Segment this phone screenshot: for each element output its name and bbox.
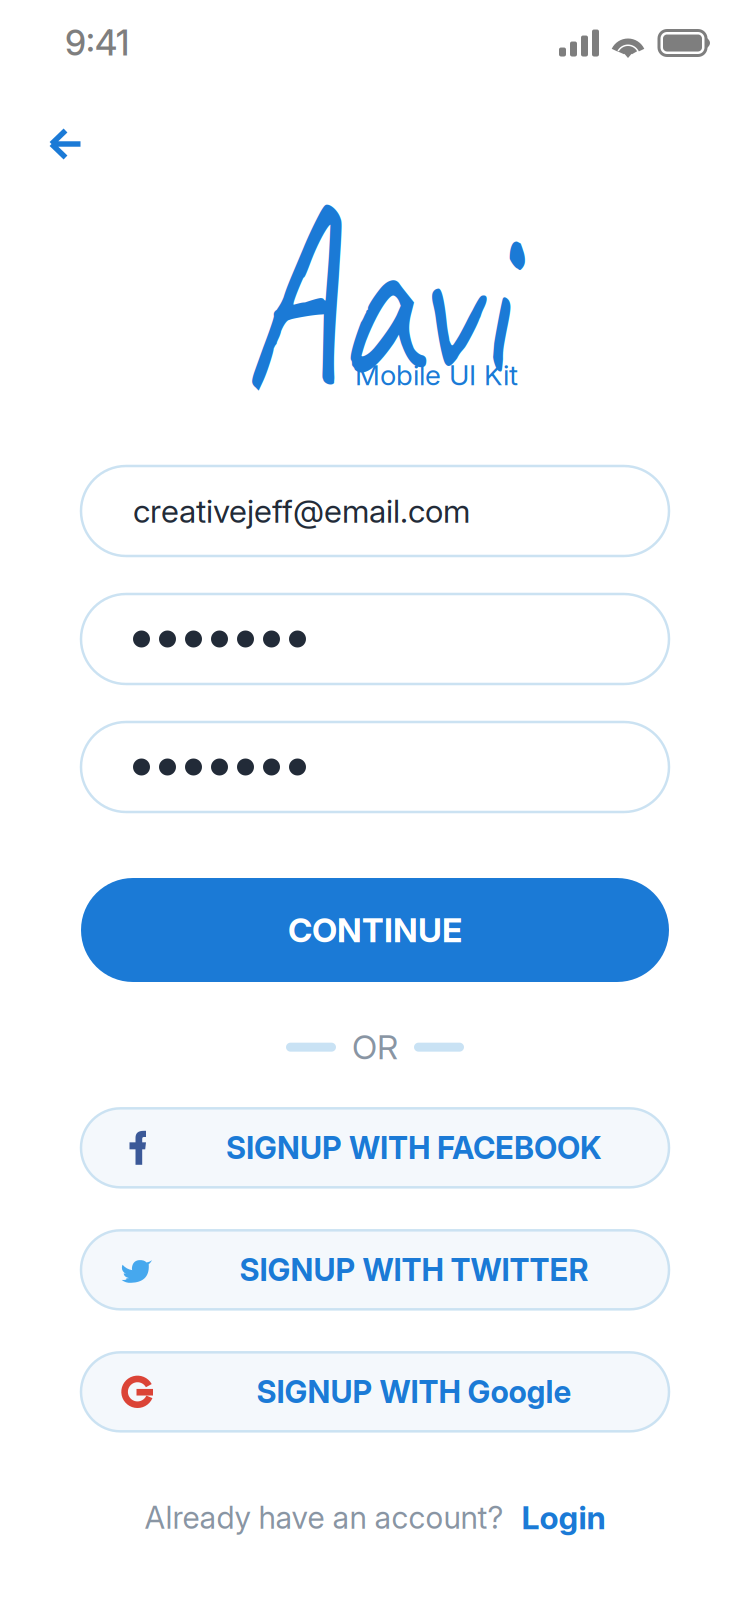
staticText: Mobile UI Kit (355, 358, 518, 392)
staticText: 9:41 (65, 22, 129, 64)
staticText: creativejeff@email.com (133, 492, 470, 530)
staticText: SIGNUP WITH TWITTER (239, 1251, 588, 1288)
staticText: Already have an account? (144, 1499, 503, 1536)
staticText: Login (521, 1498, 605, 1537)
staticText: OR (352, 1027, 398, 1067)
staticText: CONTINUE (288, 910, 462, 950)
staticText: SIGNUP WITH Google (256, 1373, 571, 1410)
button[interactable]: Back (0, 58, 106, 176)
button[interactable]: CONTINUE (81, 878, 669, 982)
button[interactable]: SIGNUP WITH FACEBOOK (81, 1108, 669, 1187)
button[interactable]: SIGNUP WITH Google (81, 1352, 669, 1431)
staticText: SIGNUP WITH FACEBOOK (226, 1129, 602, 1166)
button[interactable]: SIGNUP WITH TWITTER (81, 1230, 669, 1309)
button[interactable]: Login (521, 1498, 605, 1537)
staticText: Aavi (190, 134, 559, 456)
